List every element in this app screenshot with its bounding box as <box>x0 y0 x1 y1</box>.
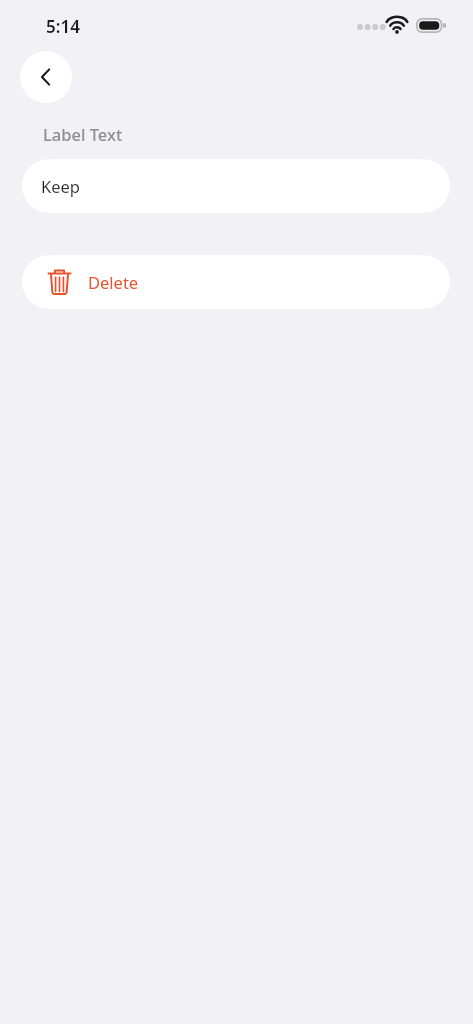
button[interactable]: Delete <box>22 255 450 309</box>
staticText: Delete <box>88 271 139 293</box>
staticText: Keep <box>41 175 80 197</box>
staticText: 5:14 <box>46 15 80 38</box>
staticText: Label Text <box>43 123 123 145</box>
button[interactable]: Keep <box>22 159 450 213</box>
button[interactable]: Back <box>20 51 72 103</box>
